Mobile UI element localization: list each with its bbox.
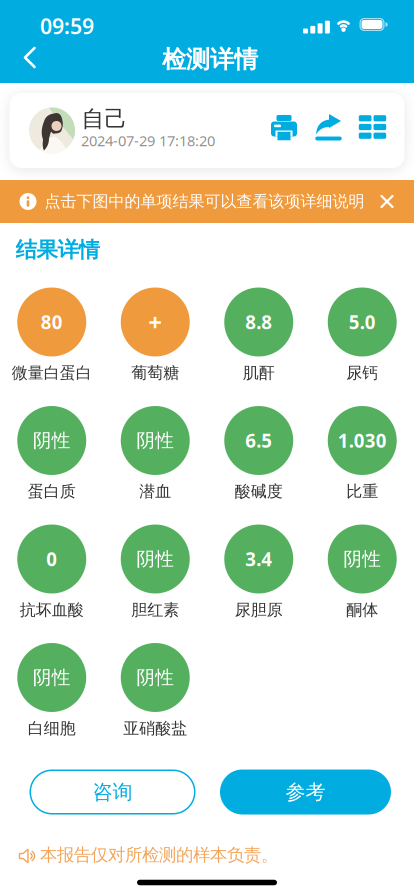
staticText: 8.8: [245, 310, 272, 334]
button[interactable]: 肌酐: [207, 287, 310, 390]
button[interactable]: 参考: [220, 769, 391, 814]
staticText: 肌酐: [243, 363, 275, 383]
button[interactable]: 葡萄糖: [103, 287, 207, 390]
staticText: +: [148, 306, 162, 338]
staticText: 3.4: [245, 547, 272, 571]
button[interactable]: Grid report: [358, 113, 386, 141]
staticText: 抗坏血酸: [20, 600, 84, 620]
staticText: 尿钙: [346, 363, 378, 383]
staticText: 阴性: [136, 666, 174, 689]
button[interactable]: 蛋白质: [0, 406, 103, 509]
staticText: 亚硝酸盐: [123, 719, 187, 738]
button[interactable]: 酮体: [310, 524, 414, 627]
button[interactable]: Share: [314, 113, 342, 141]
staticText: 酮体: [346, 600, 378, 620]
button[interactable]: Back: [18, 45, 42, 69]
staticText: 2024-07-29 17:18:20: [81, 131, 215, 150]
button[interactable]: 比重: [310, 406, 414, 509]
staticText: 5.0: [349, 310, 376, 334]
staticText: 09:59: [40, 12, 94, 40]
button[interactable]: 抗坏血酸: [0, 524, 103, 627]
button[interactable]: 胆红素: [103, 524, 207, 627]
staticText: 白细胞: [28, 719, 76, 738]
button[interactable]: 尿钙: [310, 287, 414, 390]
staticText: 0: [46, 547, 57, 571]
staticText: 80: [41, 310, 63, 334]
staticText: 阴性: [343, 547, 381, 570]
button[interactable]: 咨询: [29, 769, 195, 814]
staticText: 潜血: [139, 482, 171, 501]
staticText: 阴性: [33, 429, 71, 452]
staticText: 1.030: [338, 428, 387, 453]
staticText: 检测详情: [162, 45, 258, 74]
staticText: 微量白蛋白: [12, 363, 92, 383]
staticText: 6.5: [245, 428, 272, 453]
button[interactable]: Print: [270, 113, 298, 141]
staticText: 蛋白质: [28, 482, 76, 501]
staticText: 本报告仅对所检测的样本负责。: [40, 844, 278, 866]
staticText: 参考: [285, 780, 325, 804]
button[interactable]: 亚硝酸盐: [103, 643, 207, 746]
staticText: 尿胆原: [235, 600, 283, 620]
button[interactable]: 尿胆原: [207, 524, 310, 627]
staticText: 阴性: [136, 547, 174, 570]
staticText: 比重: [346, 482, 378, 501]
button[interactable]: 酸碱度: [207, 406, 310, 509]
staticText: 阴性: [33, 666, 71, 689]
staticText: 阴性: [136, 429, 174, 452]
staticText: 酸碱度: [235, 482, 283, 501]
staticText: 葡萄糖: [131, 363, 179, 383]
button[interactable]: Close: [379, 193, 395, 209]
staticText: 点击下图中的单项结果可以查看该项详细说明: [44, 192, 364, 211]
staticText: 结果详情: [15, 237, 99, 263]
button[interactable]: 白细胞: [0, 643, 103, 746]
button[interactable]: 潜血: [103, 406, 207, 509]
button[interactable]: 微量白蛋白: [0, 287, 103, 390]
staticText: 自己: [81, 105, 127, 133]
staticText: 咨询: [92, 780, 132, 804]
staticText: 胆红素: [131, 600, 179, 620]
